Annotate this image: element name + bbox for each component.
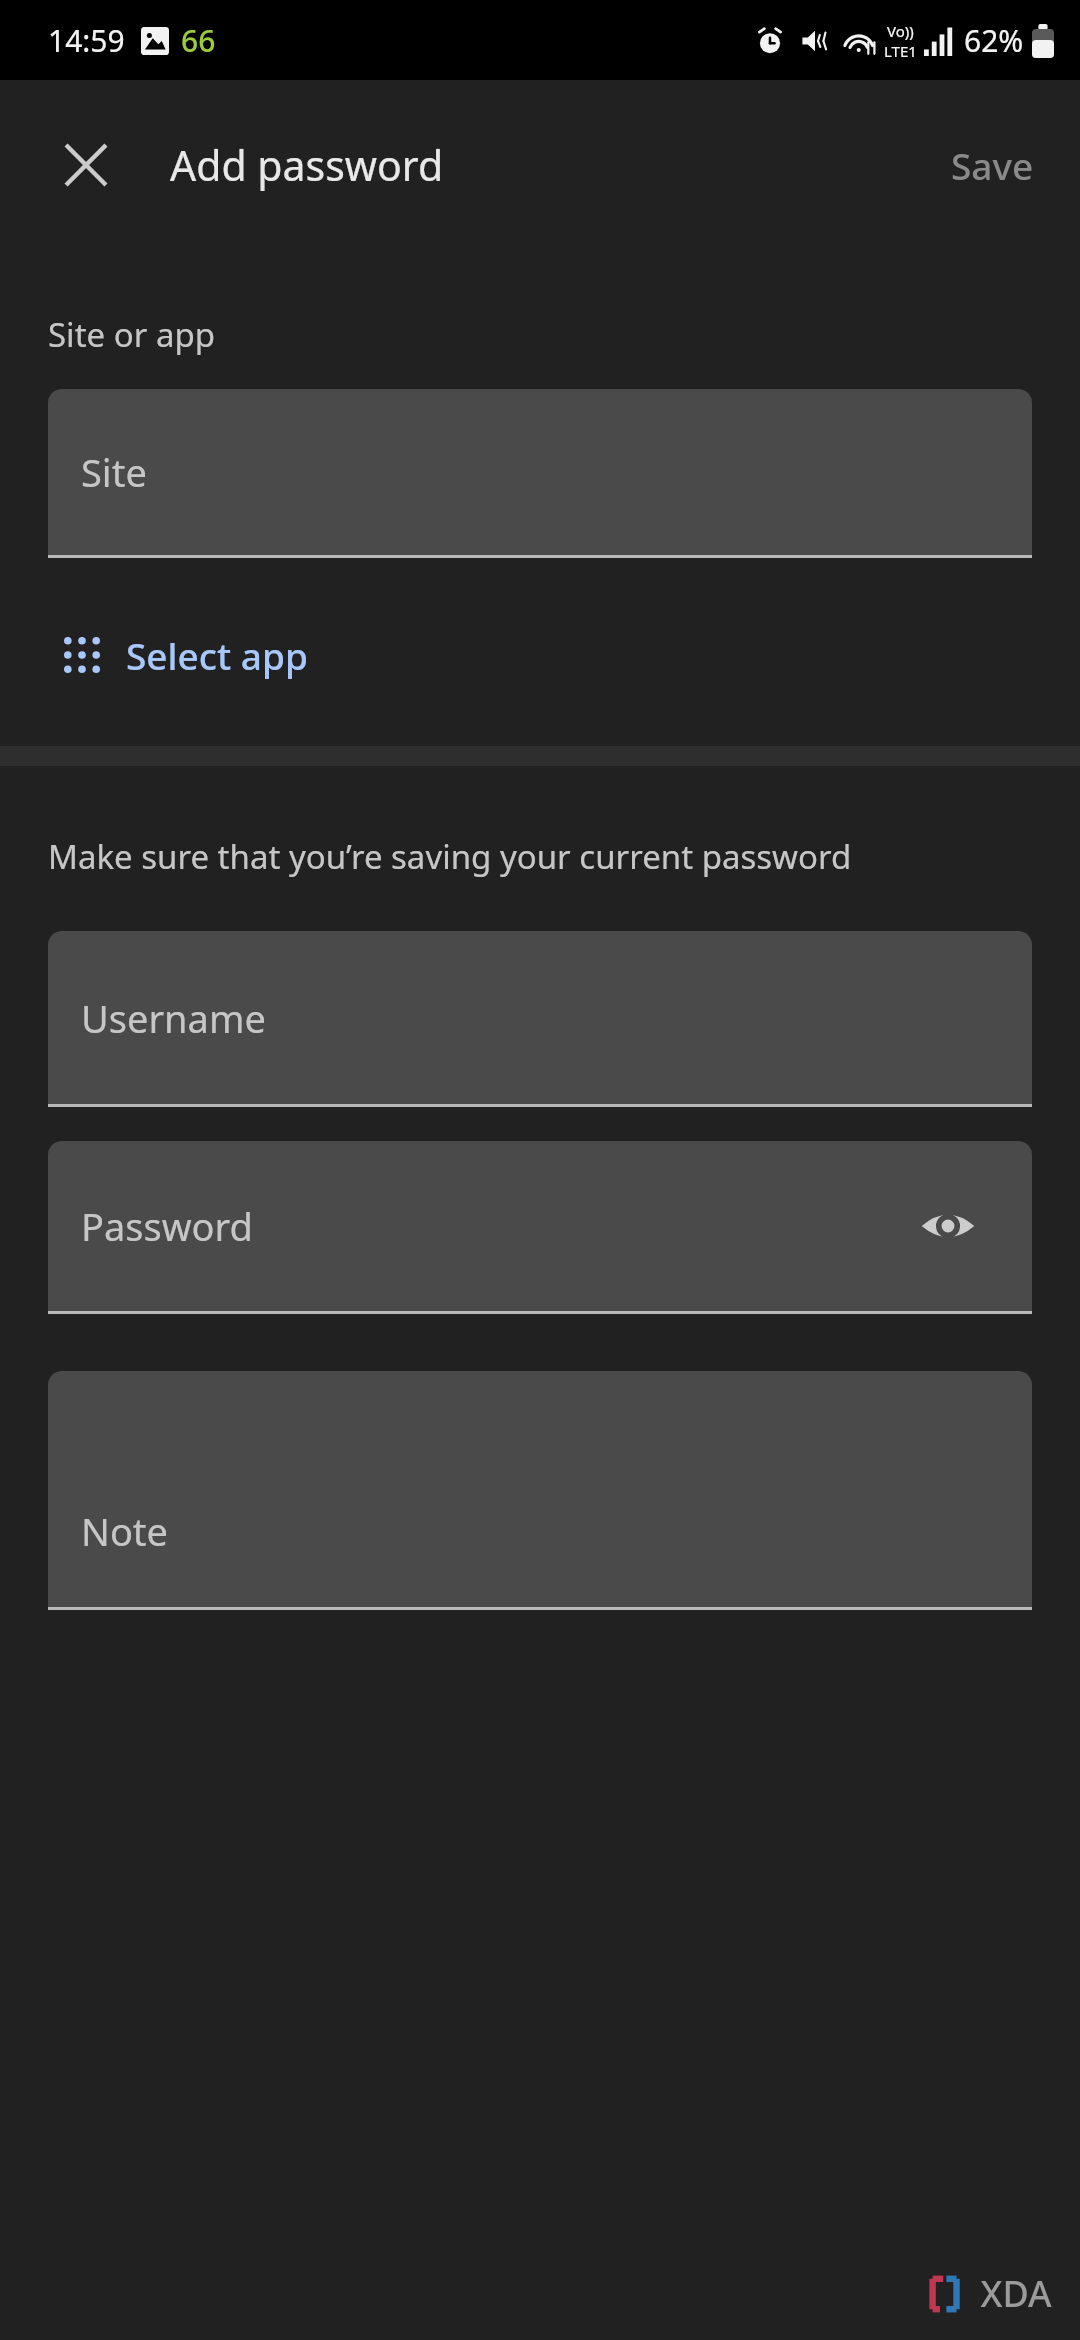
staticText: Site or app [48, 312, 216, 357]
button[interactable]: Password [48, 1141, 1032, 1311]
staticText: 66 [181, 20, 216, 61]
staticText: Vo)) [887, 21, 914, 41]
button[interactable]: Username [48, 931, 1032, 1104]
button[interactable]: Close [30, 109, 142, 221]
staticText: Make sure that you’re saving your curren… [48, 834, 852, 879]
staticText: Add password [170, 137, 444, 193]
staticText: Username [81, 992, 266, 1044]
staticText: 14:59 [48, 20, 125, 61]
button[interactable]: Select app [48, 616, 322, 694]
staticText: Site [81, 446, 147, 498]
staticText: 62% [964, 20, 1024, 61]
button[interactable]: Save [923, 122, 1062, 208]
staticText: LTE1 [884, 41, 917, 61]
staticText: XDA [980, 2269, 1052, 2318]
button[interactable]: Site [48, 389, 1032, 555]
staticText: Save [951, 140, 1034, 190]
button[interactable]: Note [48, 1371, 1032, 1607]
staticText: Select app [126, 630, 308, 680]
staticText: Password [81, 1200, 253, 1252]
staticText: Note [81, 1505, 169, 1557]
button[interactable]: Show password [904, 1182, 992, 1270]
